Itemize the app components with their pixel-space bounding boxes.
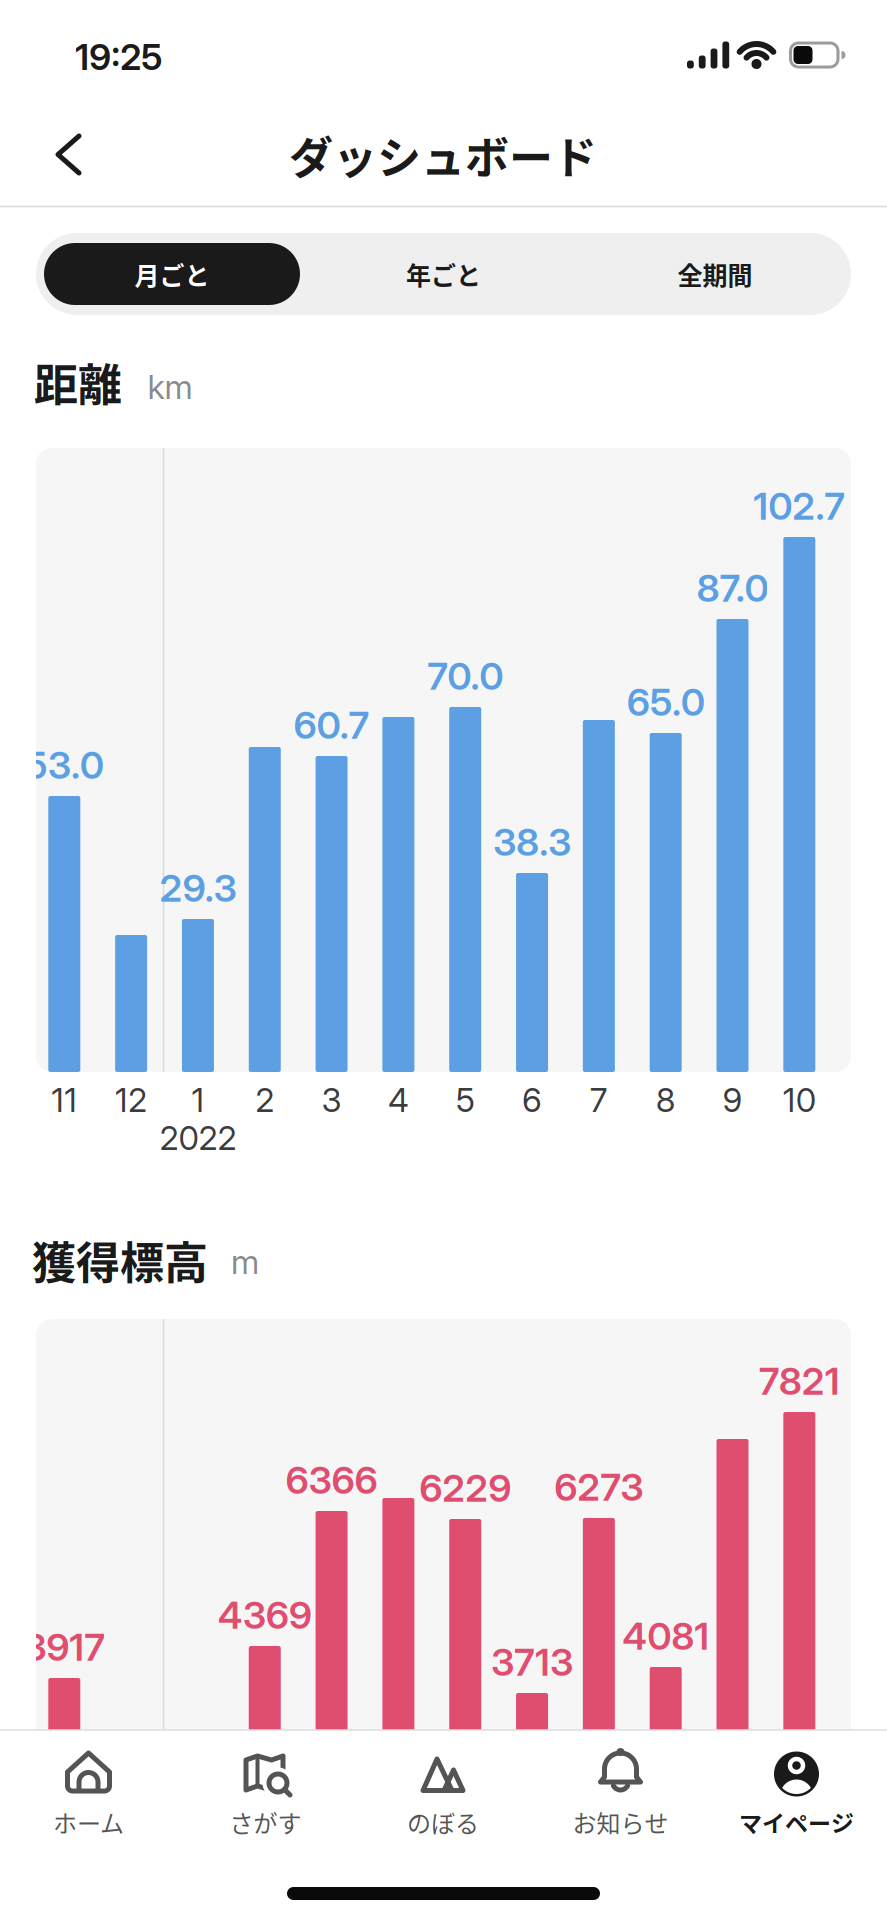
staticText: 4 — [388, 1080, 409, 1120]
staticText: 距離 — [34, 350, 122, 414]
staticText: 6273 — [554, 1464, 643, 1510]
staticText: さがす — [229, 1805, 301, 1839]
staticText: 2022 — [159, 1118, 236, 1158]
staticText: km — [147, 367, 192, 407]
button[interactable]: さがす — [185, 1749, 345, 1845]
button[interactable] — [0, 0, 887, 1920]
staticText: 4081 — [622, 1613, 709, 1659]
staticText: 6366 — [286, 1457, 378, 1503]
staticText: 3 — [322, 1080, 342, 1120]
staticText: 6 — [522, 1080, 542, 1120]
staticText: お知らせ — [572, 1805, 668, 1839]
staticText: 5 — [456, 1080, 475, 1120]
button[interactable]: お知らせ — [540, 1749, 700, 1845]
staticText: 19:25 — [75, 35, 163, 79]
staticText: 29.3 — [159, 865, 236, 911]
staticText: 6229 — [419, 1465, 511, 1511]
staticText: 9 — [722, 1080, 742, 1120]
button[interactable]: 全期間 — [587, 243, 843, 305]
staticText: 8 — [656, 1080, 676, 1120]
staticText: ホーム — [53, 1805, 124, 1839]
staticText: 70.0 — [427, 653, 503, 699]
staticText: 月ごと — [134, 256, 209, 292]
staticText: マイページ — [739, 1805, 854, 1839]
staticText: 102.7 — [753, 483, 845, 529]
staticText: 3713 — [491, 1639, 573, 1685]
staticText: 3917 — [23, 1624, 105, 1670]
staticText: m — [231, 1242, 259, 1282]
staticText: ダッシュボード — [289, 123, 597, 187]
staticText: 4369 — [218, 1592, 312, 1638]
button[interactable]: のぼる — [363, 1749, 523, 1845]
staticText: 53.0 — [25, 742, 104, 788]
staticText: 年ごと — [406, 256, 481, 292]
staticText: 7 — [590, 1080, 608, 1120]
staticText: 11 — [51, 1080, 77, 1120]
staticText: 10 — [783, 1080, 816, 1120]
button[interactable]: マイページ — [716, 1749, 876, 1845]
staticText: 2 — [255, 1080, 274, 1120]
staticText: 獲得標高 — [32, 1228, 208, 1292]
button[interactable]: 年ごと — [315, 243, 571, 305]
staticText: 12 — [115, 1080, 147, 1120]
staticText: 60.7 — [294, 702, 370, 748]
staticText: 87.0 — [696, 565, 768, 611]
button[interactable]: 月ごと — [44, 243, 300, 305]
staticText: 1 — [191, 1080, 204, 1120]
button[interactable]: ホーム — [8, 1749, 168, 1845]
staticText: 38.3 — [493, 819, 571, 865]
staticText: 全期間 — [677, 256, 752, 292]
staticText: 7821 — [759, 1358, 840, 1404]
staticText: のぼる — [407, 1805, 479, 1839]
staticText: 65.0 — [627, 679, 705, 725]
